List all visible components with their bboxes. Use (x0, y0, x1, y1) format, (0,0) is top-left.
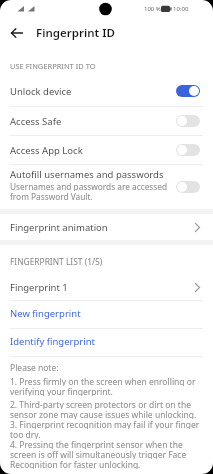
staticText: Fingerprint ID (36, 25, 115, 41)
button[interactable]: Fingerprint 1 (0, 274, 213, 300)
button[interactable]: Fingerprint animation (0, 214, 213, 240)
button[interactable]: Autofill usernames and passwords (0, 165, 213, 209)
staticText: 100 % (144, 5, 161, 13)
staticText: 10:00 (173, 5, 189, 13)
staticText: USE FINGERPRINT ID TO (10, 61, 96, 71)
staticText: 2. Third-party screen protectors or dirt… (10, 399, 191, 409)
button[interactable]: New fingerprint (0, 301, 213, 328)
button[interactable]: Access App Lock (0, 136, 213, 164)
staticText: Identify fingerprint (10, 335, 95, 348)
button[interactable]: Unlock device (0, 76, 213, 106)
staticText: Fingerprint 1 (10, 281, 68, 294)
staticText: sensor zone may cause issues while unloc… (10, 409, 197, 419)
staticText: Fingerprint animation (10, 221, 108, 234)
staticText: from Password Vault. (10, 191, 93, 201)
staticText: 3. Fingerprint recognition may fail if y… (10, 419, 203, 429)
staticText: FINGERPRINT LIST (1/5) (10, 256, 103, 267)
staticText: 1. Press firmly on the screen when enrol… (10, 376, 196, 386)
staticText: Unlock device (10, 85, 72, 98)
button[interactable] (10, 26, 24, 40)
staticText: verifying your fingerprint. (10, 386, 113, 396)
staticText: Please note: (10, 362, 59, 372)
staticText: screen is off will simultaneously trigge… (10, 449, 187, 459)
button[interactable]: Access Safe (0, 107, 213, 135)
staticText: Usernames and passwords are accessed (10, 181, 168, 191)
staticText: too dry. (10, 429, 41, 439)
staticText: 4. Pressing the fingerprint sensor when … (10, 439, 183, 449)
staticText: Access Safe (10, 115, 62, 128)
button[interactable]: Identify fingerprint (0, 329, 213, 356)
staticText: New fingerprint (10, 307, 81, 320)
staticText: Autofill usernames and passwords (10, 168, 164, 181)
staticText: Recognition for faster unlocking. (10, 459, 141, 469)
staticText: Access App Lock (10, 144, 83, 157)
